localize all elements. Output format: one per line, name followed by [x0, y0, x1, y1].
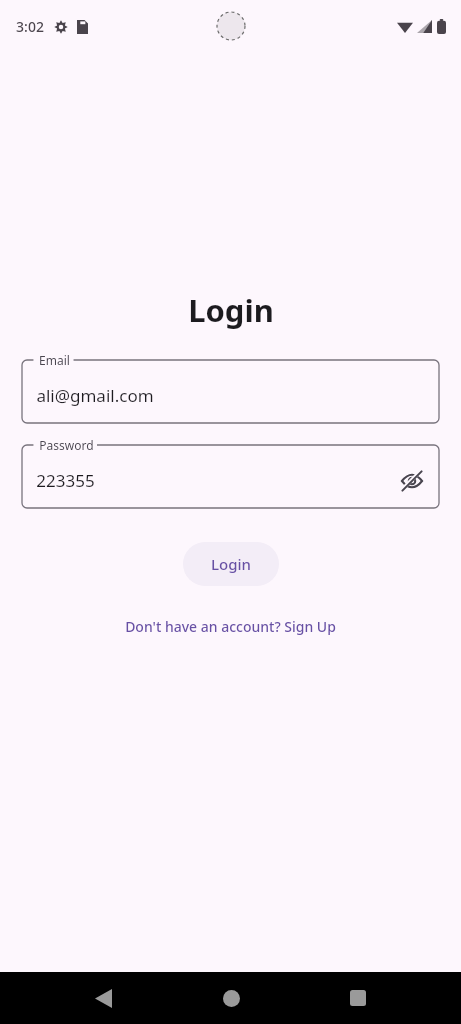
- button[interactable]: Recent apps: [334, 974, 382, 1022]
- button[interactable]: Back: [79, 974, 127, 1022]
- staticText: 223355: [36, 469, 95, 492]
- staticText: ali@gmail.com: [36, 384, 154, 407]
- button[interactable]: Login: [183, 542, 279, 586]
- button[interactable]: Home: [207, 974, 255, 1022]
- staticText: Don't have an account? Sign Up: [125, 617, 336, 636]
- staticText: Login: [188, 289, 274, 331]
- button[interactable]: Toggle password visibility: [395, 464, 429, 498]
- staticText: Email: [39, 352, 70, 368]
- staticText: 3:02: [16, 17, 44, 36]
- button[interactable]: Don't have an account? Sign Up: [117, 613, 344, 640]
- button[interactable]: Password: [22, 445, 439, 508]
- staticText: Login: [211, 554, 251, 574]
- staticText: Password: [39, 437, 94, 453]
- button[interactable]: Email: [22, 360, 439, 423]
